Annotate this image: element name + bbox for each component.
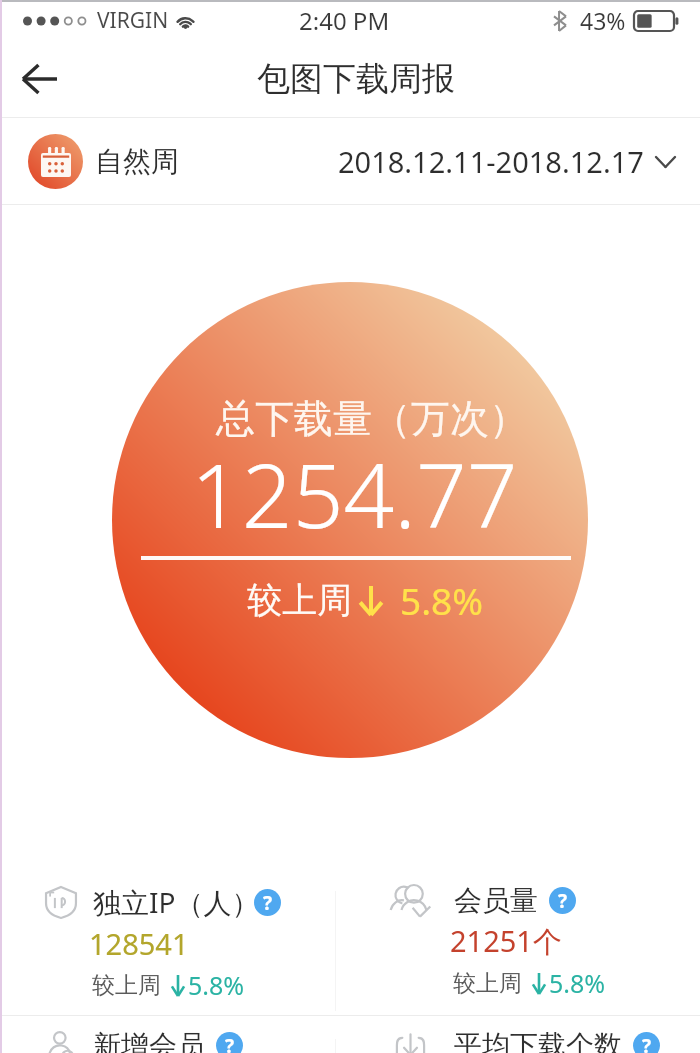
staticText: 较上周 (247, 578, 352, 622)
staticText: 新增会员 (93, 1028, 205, 1053)
staticText: 5.8% (400, 575, 483, 625)
staticText: 较上周 (453, 969, 522, 998)
staticText: 包图下载周报 (257, 58, 455, 100)
staticText: 5.8% (549, 966, 606, 1000)
staticText: 5.8% (188, 968, 245, 1002)
staticText: 会员量 (454, 883, 538, 918)
button[interactable]: 独立IP（人） (0, 867, 350, 1012)
staticText: ? (642, 1033, 652, 1053)
staticText: 平均下载个数 (454, 1028, 622, 1053)
staticText: 较上周 (92, 971, 161, 1000)
staticText: 128541 (89, 924, 189, 963)
staticText: ? (225, 1033, 235, 1053)
button[interactable]: 平均下载个数 (350, 1012, 700, 1053)
staticText: 1254.77 (191, 433, 518, 554)
button[interactable]: 新增会员 (0, 1012, 350, 1053)
staticText: 总下载量（万次） (216, 394, 528, 443)
staticText: 43% (580, 5, 626, 36)
staticText: 自然周 (95, 144, 179, 179)
staticText: 独立IP（人） (93, 883, 260, 921)
button[interactable]: 自然周 (0, 118, 700, 205)
staticText: VIRGIN (97, 6, 169, 35)
staticText: 21251个 (450, 921, 562, 961)
button[interactable]: 会员量 (350, 867, 700, 1012)
staticText: ? (263, 890, 273, 916)
button[interactable]: Back (0, 40, 78, 118)
staticText: 2018.12.11-2018.12.17 (338, 142, 644, 181)
staticText: ? (558, 888, 568, 914)
staticText: 2:40 PM (299, 4, 390, 37)
